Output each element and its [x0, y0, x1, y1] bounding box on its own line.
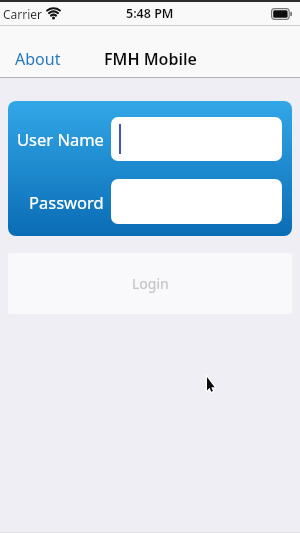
staticText: Carrier	[3, 6, 43, 22]
button[interactable]: Login	[8, 253, 292, 314]
staticText: 5:48 PM	[126, 5, 174, 22]
staticText: User Name	[17, 128, 104, 150]
staticText: About	[15, 48, 61, 70]
button[interactable]: About	[9, 42, 67, 76]
staticText: Password	[29, 191, 104, 213]
button[interactable]	[111, 117, 282, 161]
button[interactable]	[111, 179, 282, 224]
staticText: FMH Mobile	[104, 48, 197, 70]
staticText: Login	[132, 274, 169, 293]
